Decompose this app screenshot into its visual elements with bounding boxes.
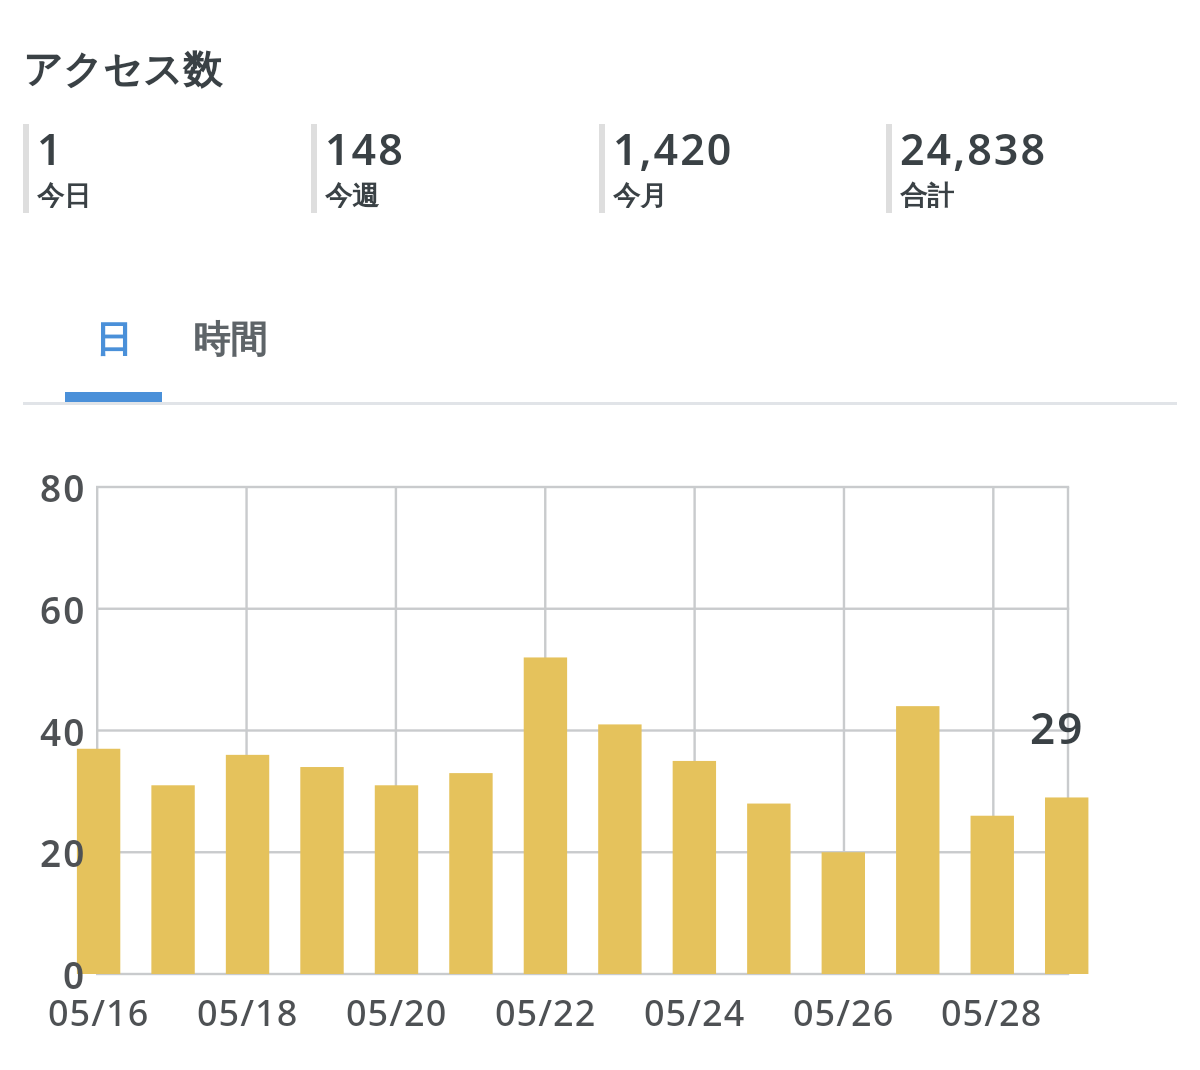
staticText: 40 bbox=[40, 706, 87, 756]
staticText: 0 bbox=[63, 949, 87, 999]
staticText: 29 bbox=[1030, 697, 1085, 747]
button[interactable]: 148 bbox=[311, 124, 581, 213]
staticText: 1,420 bbox=[613, 119, 734, 178]
staticText: 05/22 bbox=[495, 988, 597, 1032]
staticText: 1 bbox=[37, 119, 64, 178]
staticText: 24,838 bbox=[900, 119, 1047, 178]
staticText: 合計 bbox=[900, 179, 954, 208]
staticText: 今週 bbox=[325, 179, 379, 208]
staticText: 時間 bbox=[193, 316, 267, 363]
staticText: 60 bbox=[40, 584, 87, 634]
staticText: アクセス数 bbox=[23, 45, 222, 94]
button[interactable]: 24,838 bbox=[886, 124, 1156, 213]
staticText: 05/28 bbox=[941, 988, 1043, 1032]
staticText: 148 bbox=[325, 119, 405, 178]
button[interactable]: 1 bbox=[23, 124, 293, 213]
staticText: 05/18 bbox=[197, 988, 299, 1032]
button[interactable]: 時間 bbox=[181, 300, 278, 405]
button[interactable]: 日 bbox=[65, 300, 162, 405]
staticText: 80 bbox=[40, 462, 87, 512]
staticText: 05/16 bbox=[48, 988, 150, 1032]
button[interactable]: 1,420 bbox=[599, 124, 869, 213]
staticText: 05/24 bbox=[644, 988, 746, 1032]
staticText: 05/26 bbox=[793, 988, 895, 1032]
staticText: 今日 bbox=[37, 179, 91, 208]
staticText: 今月 bbox=[613, 179, 667, 208]
staticText: 日 bbox=[95, 316, 132, 363]
other: 1日あたりのアクセス数の棒グラフ bbox=[0, 0, 1200, 1070]
staticText: 05/20 bbox=[346, 988, 448, 1032]
staticText: 20 bbox=[40, 827, 87, 877]
